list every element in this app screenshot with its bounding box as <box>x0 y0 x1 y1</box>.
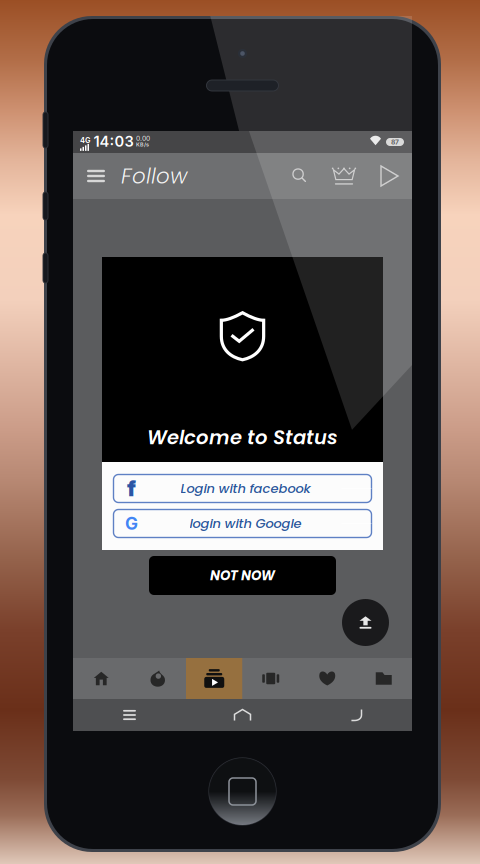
button[interactable]: Search <box>279 153 321 199</box>
button[interactable]: Reels <box>242 658 299 699</box>
button[interactable]: Videos <box>186 658 242 699</box>
button[interactable]: Files <box>355 658 412 699</box>
button[interactable]: Premium <box>321 153 367 199</box>
button[interactable]: Home <box>186 699 299 731</box>
button[interactable]: Menu <box>73 153 119 199</box>
staticText: 4G <box>80 136 91 145</box>
staticText: NOT NOW <box>210 566 275 585</box>
button[interactable]: Upload <box>342 599 389 646</box>
button[interactable]: G <box>113 509 371 537</box>
button[interactable]: Recents <box>73 699 186 731</box>
button[interactable]: f <box>113 474 371 502</box>
button[interactable]: Trending <box>129 658 186 699</box>
staticText: KB/s <box>136 141 149 148</box>
staticText: 14:03 <box>93 133 133 150</box>
staticText: G <box>125 513 138 534</box>
staticText: Follow <box>121 161 187 191</box>
staticText: Welcome to Status <box>147 424 338 451</box>
staticText: login with Google <box>189 514 301 533</box>
staticText: Login with facebook <box>180 479 310 498</box>
button[interactable]: Play Store <box>367 153 412 199</box>
staticText: f <box>127 476 136 501</box>
button[interactable]: Back <box>299 699 412 731</box>
staticText: 87 <box>391 138 399 146</box>
button[interactable]: Favourites <box>299 658 355 699</box>
button[interactable]: NOT NOW <box>149 556 336 595</box>
button[interactable]: Home <box>73 658 129 699</box>
staticText: 0.00 <box>136 134 150 142</box>
